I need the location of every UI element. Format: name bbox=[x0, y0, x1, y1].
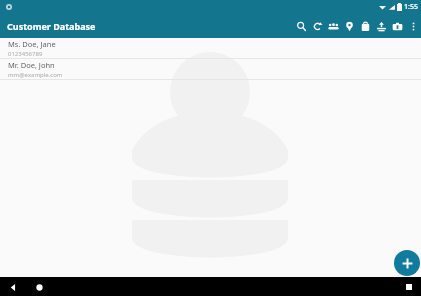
button[interactable]: Places bbox=[341, 14, 357, 38]
button[interactable]: Sync bbox=[309, 14, 325, 38]
button[interactable]: Mr. Doe, John bbox=[0, 59, 421, 79]
staticText: 0123456789 bbox=[8, 50, 43, 58]
button[interactable]: Add customer bbox=[394, 250, 420, 276]
button[interactable]: Home bbox=[32, 280, 46, 294]
button[interactable]: Recent apps bbox=[402, 280, 416, 294]
staticText: 1:55 bbox=[404, 2, 418, 12]
button[interactable]: Folder bbox=[357, 14, 373, 38]
staticText: Mr. Doe, John bbox=[8, 60, 55, 70]
staticText: Ms. Doe, Jane bbox=[8, 39, 56, 49]
button[interactable]: Back bbox=[6, 280, 20, 294]
button[interactable]: Export bbox=[373, 14, 389, 38]
staticText: mm@example.com bbox=[8, 71, 63, 79]
button[interactable]: Ms. Doe, Jane bbox=[0, 38, 421, 58]
button[interactable]: Groups bbox=[325, 14, 341, 38]
button[interactable]: Business bbox=[389, 14, 405, 38]
button[interactable]: More options bbox=[405, 14, 421, 38]
staticText: Customer Database bbox=[7, 20, 96, 32]
button[interactable]: Search bbox=[293, 14, 309, 38]
